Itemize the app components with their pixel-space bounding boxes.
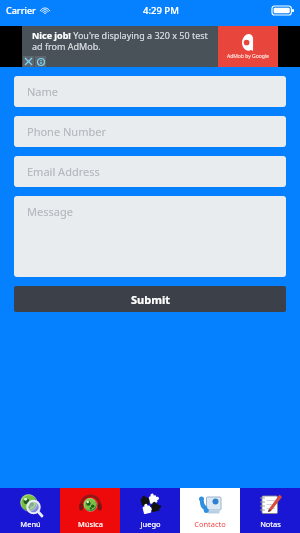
staticText: Carrier <box>6 4 36 16</box>
staticText: AdMob by Google <box>227 53 269 60</box>
button[interactable]: Close ad <box>23 56 34 67</box>
staticText: Submit <box>131 292 170 307</box>
staticText: 4:29 PM <box>143 4 179 17</box>
staticText: Juego <box>140 519 161 529</box>
button[interactable]: Menú <box>0 488 60 533</box>
staticText: Name <box>27 84 59 99</box>
staticText: Email Address <box>27 164 100 179</box>
button[interactable]: Submit <box>14 286 286 312</box>
staticText: Música <box>78 519 103 529</box>
staticText: Menú <box>20 519 41 529</box>
staticText: Phone Number <box>27 124 106 139</box>
button[interactable]: Contacto <box>180 488 240 533</box>
staticText: Nice job! You're displaying a 320 x 50 t… <box>32 29 214 52</box>
button[interactable]: Música <box>60 488 120 533</box>
button[interactable]: Email Address <box>14 156 286 187</box>
button[interactable]: Ad info <box>35 56 46 67</box>
button[interactable]: Nice job! You're displaying a 320 x 50 t… <box>0 26 300 67</box>
staticText: Notas <box>260 519 281 529</box>
button[interactable]: Name <box>14 76 286 107</box>
staticText: Contacto <box>194 519 226 529</box>
button[interactable]: Juego <box>120 488 180 533</box>
button[interactable]: Phone Number <box>14 116 286 147</box>
staticText: Message <box>27 204 73 219</box>
button[interactable]: Notas <box>240 488 300 533</box>
button[interactable]: Message <box>14 196 286 277</box>
